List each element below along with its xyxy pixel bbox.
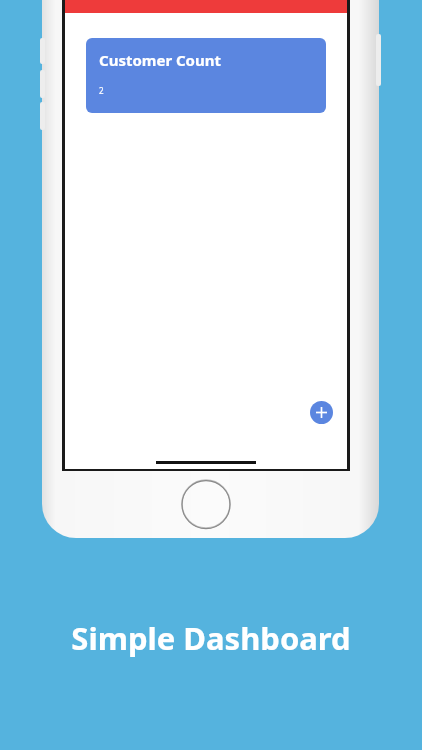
staticText: Customer Count	[99, 50, 221, 70]
button[interactable]: Home	[180, 478, 232, 530]
staticText: 2	[99, 85, 104, 96]
button[interactable]: Customer Count	[86, 38, 326, 113]
button[interactable]: Add	[310, 401, 333, 424]
staticText: Simple Dashboard	[71, 617, 351, 659]
